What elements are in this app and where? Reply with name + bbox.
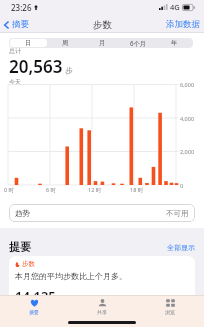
button[interactable]: 年: [156, 39, 192, 47]
staticText: 23:26: [11, 2, 32, 13]
staticText: 4,000: [180, 115, 195, 122]
staticText: 不可用: [166, 209, 189, 218]
button[interactable]: 摘要: [0, 296, 68, 327]
staticText: 总计: [9, 47, 21, 55]
staticText: 年: [171, 39, 178, 47]
staticText: 月: [99, 39, 106, 47]
staticText: 摘要: [29, 309, 39, 315]
staticText: 18 时: [130, 186, 144, 194]
button[interactable]: 周: [47, 39, 84, 47]
staticText: 提要: [9, 240, 31, 254]
staticText: 0: [180, 182, 184, 189]
button[interactable]: 浏览: [136, 296, 204, 327]
staticText: 14,135: [15, 287, 56, 305]
staticText: 共享: [97, 309, 107, 315]
staticText: 6个月: [130, 39, 146, 47]
button[interactable]: 步数: [9, 256, 195, 311]
staticText: 2,000: [180, 148, 195, 155]
button[interactable]: 月: [84, 39, 120, 47]
button[interactable]: 共享: [68, 296, 136, 327]
button[interactable]: 全部显示: [167, 242, 195, 253]
staticText: 全部显示: [167, 243, 195, 252]
button[interactable]: 趋势: [9, 204, 195, 222]
staticText: 步数: [93, 19, 112, 31]
staticText: 6,000: [180, 81, 195, 88]
staticText: 4G: [170, 2, 180, 12]
staticText: 摘要: [12, 19, 29, 30]
button[interactable]: 6个月: [120, 39, 156, 47]
staticText: 今天: [9, 78, 21, 86]
staticText: 6 时: [46, 186, 57, 194]
staticText: 步数: [22, 260, 35, 268]
button[interactable]: 日: [10, 39, 47, 47]
staticText: 20,563: [9, 55, 63, 78]
staticText: 步/天: [58, 294, 74, 303]
button[interactable]: 摘要: [0, 17, 31, 32]
staticText: 日: [25, 39, 32, 47]
staticText: 浏览: [165, 309, 175, 315]
staticText: 12 时: [88, 186, 102, 194]
staticText: 0 时: [4, 186, 15, 194]
button[interactable]: 添加数据: [162, 17, 204, 32]
staticText: 趋势: [15, 209, 30, 218]
staticText: 本月您的平均步数比上个月多。: [15, 271, 127, 281]
staticText: 周: [62, 39, 69, 47]
staticText: 添加数据: [166, 19, 200, 30]
staticText: 步: [65, 66, 73, 75]
